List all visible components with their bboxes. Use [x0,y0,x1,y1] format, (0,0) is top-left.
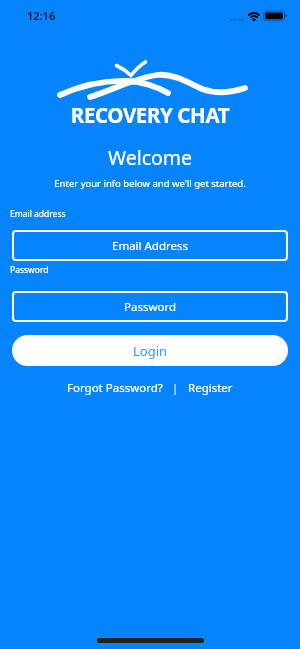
staticText: RECOVERY CHAT [0,101,300,129]
staticText: | [172,380,179,396]
button[interactable]: Login [12,335,288,366]
button[interactable]: Register [188,380,233,396]
staticText: Email address [10,208,66,220]
button[interactable]: Password [12,291,288,322]
button[interactable]: Email Address [12,230,288,261]
staticText: Password [124,299,177,315]
staticText: Welcome [0,144,300,171]
staticText: Email Address [112,238,189,254]
staticText: Enter your info below and we'll get star… [0,177,300,190]
button[interactable]: Forgot Password? [67,380,163,396]
staticText: 12:16 [27,8,56,23]
staticText: Password [10,264,49,276]
staticText: Login [133,342,168,360]
